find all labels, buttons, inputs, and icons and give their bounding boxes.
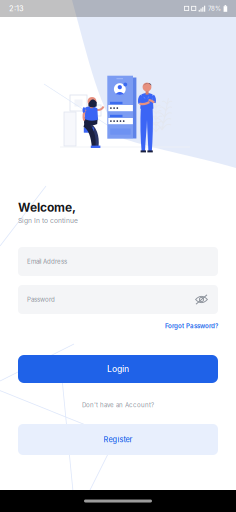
- button[interactable]: Register: [18, 424, 218, 455]
- staticText: Welcome,: [18, 200, 76, 215]
- staticText: Password: [27, 296, 55, 303]
- staticText: 78%: [208, 5, 221, 12]
- button[interactable]: Email Address: [18, 247, 218, 276]
- staticText: Forgot Password?: [165, 322, 218, 330]
- staticText: Register: [103, 435, 132, 444]
- staticText: Email Address: [27, 258, 67, 265]
- staticText: Login: [107, 364, 129, 374]
- button[interactable]: Forgot Password?: [18, 321, 218, 331]
- button[interactable]: Login: [18, 355, 218, 383]
- staticText: Sign In to continue: [18, 216, 78, 225]
- button[interactable]: Password: [18, 285, 218, 314]
- staticText: Don't have an Account?: [82, 401, 154, 409]
- staticText: 2:13: [9, 4, 24, 13]
